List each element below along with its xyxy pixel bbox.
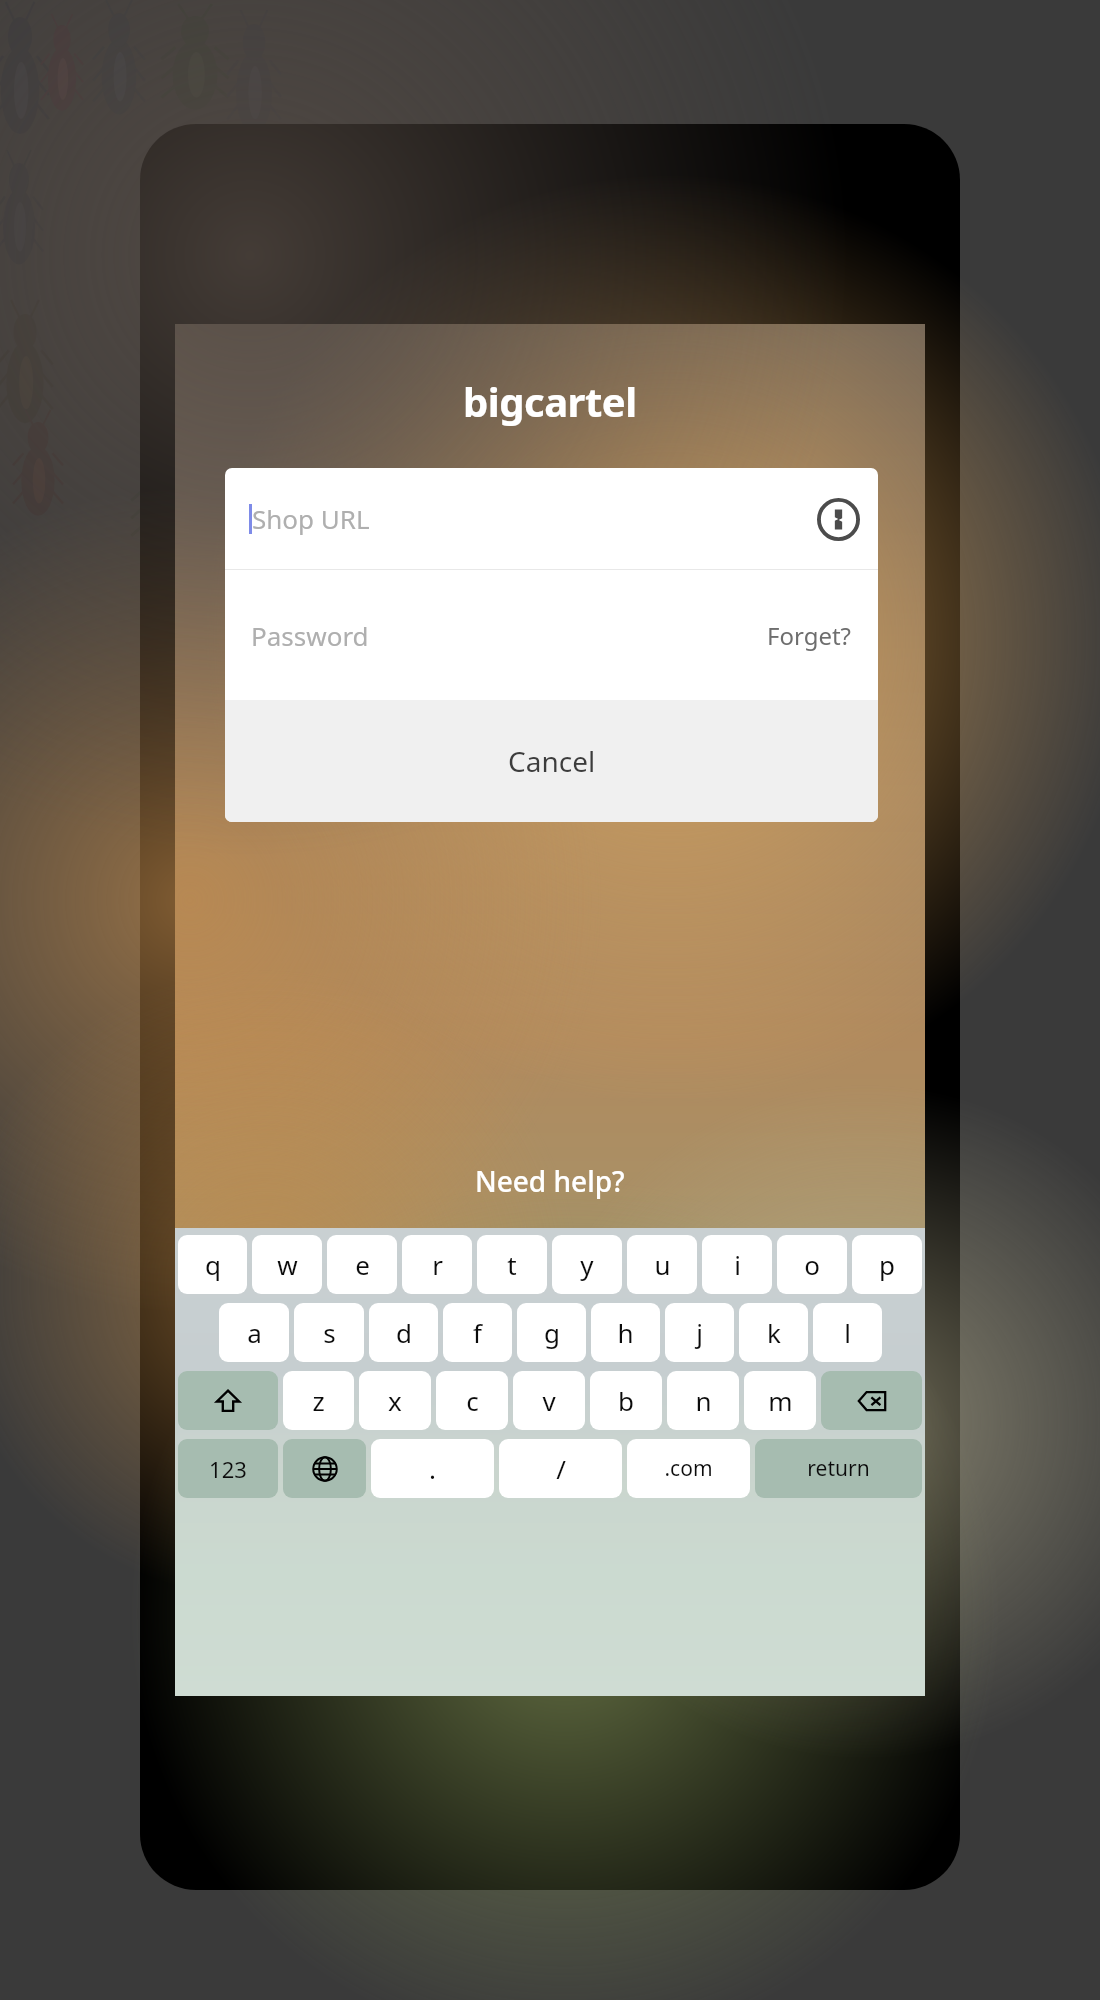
button[interactable]: f [443,1303,512,1362]
button[interactable]: d [369,1303,438,1362]
button[interactable]: .com [627,1439,750,1498]
staticText: Need help? [475,1162,625,1200]
staticText: h [617,1315,634,1350]
staticText: m [768,1383,793,1418]
staticText: d [396,1315,412,1350]
staticText: s [323,1315,336,1350]
button[interactable]: Shop URL [225,468,878,569]
button[interactable]: Password [225,570,878,700]
staticText: b [618,1383,634,1418]
staticText: n [695,1383,712,1418]
button[interactable]: Shift [178,1371,278,1430]
staticText: q [205,1247,221,1282]
button[interactable]: t [477,1235,547,1294]
staticText: v [542,1383,556,1418]
button[interactable]: l [813,1303,882,1362]
button[interactable]: k [739,1303,808,1362]
button[interactable]: u [627,1235,697,1294]
button[interactable]: q [178,1235,247,1294]
button[interactable]: x [359,1371,431,1430]
staticText: return [807,1454,870,1483]
button[interactable]: v [513,1371,585,1430]
button[interactable]: b [590,1371,662,1430]
button[interactable]: e [327,1235,397,1294]
button[interactable]: return [755,1439,922,1498]
staticText: bigcartel [463,374,637,428]
button[interactable]: h [591,1303,660,1362]
button[interactable]: Forget? [767,619,852,652]
button[interactable]: 123 [178,1439,278,1498]
staticText: w [277,1247,298,1282]
button[interactable]: z [283,1371,354,1430]
staticText: p [879,1247,895,1282]
button[interactable]: / [499,1439,622,1498]
button[interactable]: Language [283,1439,366,1498]
staticText: Shop URL [252,501,370,536]
staticText: y [580,1247,594,1282]
button[interactable]: a [219,1303,289,1362]
staticText: 123 [209,1454,247,1484]
button[interactable]: c [436,1371,508,1430]
button[interactable]: p [852,1235,922,1294]
staticText: Cancel [508,742,596,780]
staticText: u [654,1247,671,1282]
button[interactable]: Fill with 1Password [816,497,860,541]
button[interactable]: o [777,1235,847,1294]
staticText: Password [251,618,369,653]
button[interactable]: n [667,1371,739,1430]
staticText: l [844,1315,851,1350]
button[interactable]: w [252,1235,322,1294]
staticText: z [312,1383,325,1418]
button[interactable]: r [402,1235,472,1294]
button[interactable]: Need help? [459,1154,641,1208]
staticText: f [473,1315,482,1350]
staticText: t [507,1247,517,1282]
staticText: i [734,1247,741,1282]
button[interactable]: j [665,1303,734,1362]
button[interactable]: s [294,1303,364,1362]
staticText: Forget? [767,619,852,652]
button[interactable]: Backspace [821,1371,922,1430]
staticText: .com [664,1454,713,1483]
staticText: c [466,1383,479,1418]
staticText: o [804,1247,820,1282]
staticText: . [429,1451,436,1486]
staticText: x [388,1383,402,1418]
button[interactable]: m [744,1371,816,1430]
staticText: / [556,1451,566,1486]
staticText: e [355,1247,370,1282]
button[interactable]: Cancel [225,700,878,822]
button[interactable]: i [702,1235,772,1294]
staticText: r [432,1247,443,1282]
button[interactable]: g [517,1303,586,1362]
staticText: g [544,1315,560,1350]
button[interactable]: y [552,1235,622,1294]
button[interactable]: . [371,1439,494,1498]
staticText: j [696,1315,703,1350]
staticText: k [767,1315,781,1350]
staticText: a [247,1315,262,1350]
